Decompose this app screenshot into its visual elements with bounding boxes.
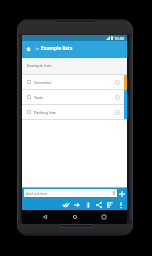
button[interactable]: Add item: [117, 188, 127, 199]
button[interactable]: Home: [69, 211, 81, 223]
button[interactable]: Info: [115, 199, 126, 210]
button[interactable]: Sort: [104, 199, 115, 210]
staticText: Add subitem: [26, 191, 48, 196]
button[interactable]: Groceries: [22, 75, 127, 89]
button[interactable]: Move: [71, 199, 82, 210]
button[interactable]: More options for Groceries: [113, 78, 122, 87]
button[interactable]: Packing lists: [22, 105, 127, 119]
button[interactable]: Mark all done: [60, 199, 71, 210]
staticText: Example lists: [41, 45, 73, 52]
button[interactable]: Back: [39, 211, 51, 223]
button[interactable]: Share: [93, 199, 104, 210]
staticText: Packing lists: [34, 110, 56, 115]
staticText: Todo: [34, 95, 43, 100]
button[interactable]: Recent apps: [98, 211, 110, 223]
button[interactable]: More options for Todo: [113, 93, 122, 102]
button[interactable]: Home: [24, 44, 33, 53]
button[interactable]: Notes: [82, 199, 93, 210]
staticText: Groceries: [34, 80, 52, 85]
staticText: Example lists: [27, 63, 52, 68]
staticText: 10:00: [114, 36, 125, 41]
button[interactable]: More options for Packing lists: [113, 108, 122, 117]
button[interactable]: Voice input: [110, 189, 117, 197]
button[interactable]: Todo: [22, 90, 127, 104]
